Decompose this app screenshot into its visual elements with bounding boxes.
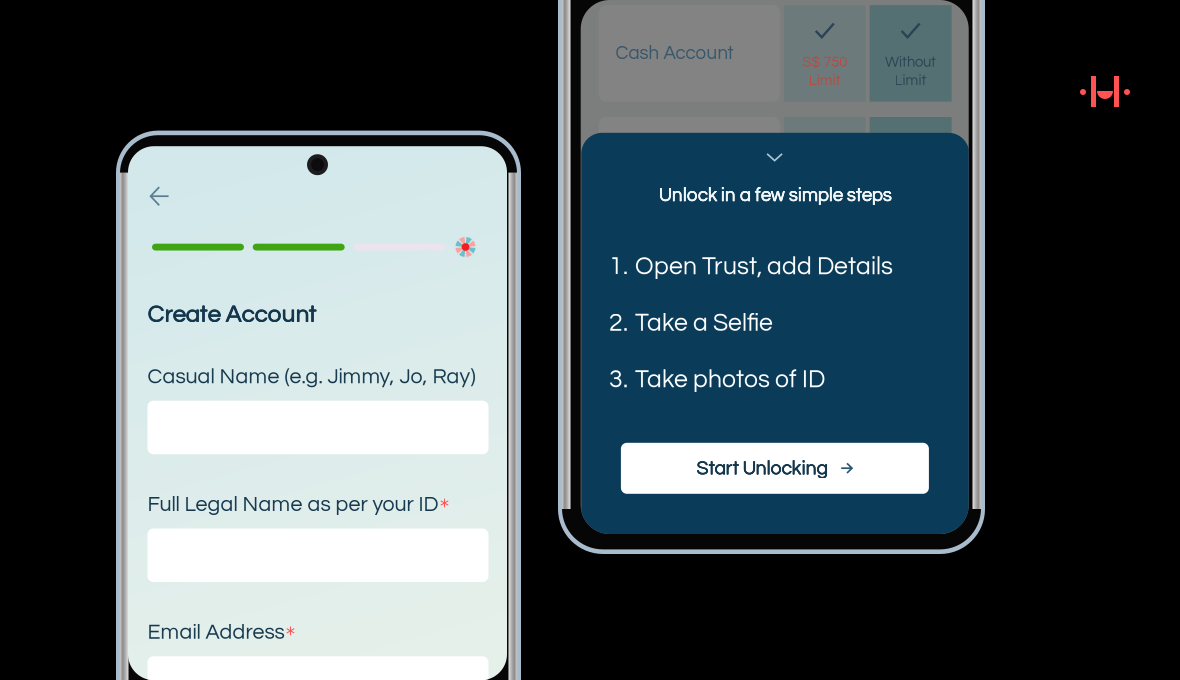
staticText: Start Unlocking [697,458,828,478]
staticText: Start Unlocking [696,458,827,478]
staticText: Create Account [147,302,316,327]
button[interactable]: Collapse sheet [738,143,812,171]
staticText: Without [885,55,936,70]
button[interactable]: Start Unlocking [621,443,929,494]
staticText: Unlock in a few simple steps [659,186,892,205]
button[interactable]: Back [138,174,182,218]
staticText: Create Account [148,302,317,326]
staticText: Start Unlocking [697,459,828,478]
staticText: Cash Account [616,44,734,63]
staticText: Take photos of ID [635,367,825,392]
staticText: Take a Selfie [635,311,773,336]
staticText: Casual Name (e.g. Jimmy, Jo, Ray) [147,366,475,388]
staticText: Email Address [147,621,284,643]
staticText: S$ 750 [802,55,847,70]
staticText: Unlock in a few simple steps [659,186,892,205]
staticText: Unlock in a few simple steps [659,186,892,205]
staticText: Open Trust, add Details [635,254,893,279]
staticText: 1. [609,254,628,279]
staticText: Full Legal Name as per your ID [147,493,438,515]
staticText: Limit [895,73,927,88]
staticText: 3. [609,367,628,392]
staticText: 2. [609,311,628,336]
staticText: Limit [809,73,841,88]
staticText: Create Account [147,302,316,326]
staticText: Start Unlocking [696,459,827,478]
staticText: Unlock in a few simple steps [659,186,892,205]
staticText: Create Account [148,302,317,327]
